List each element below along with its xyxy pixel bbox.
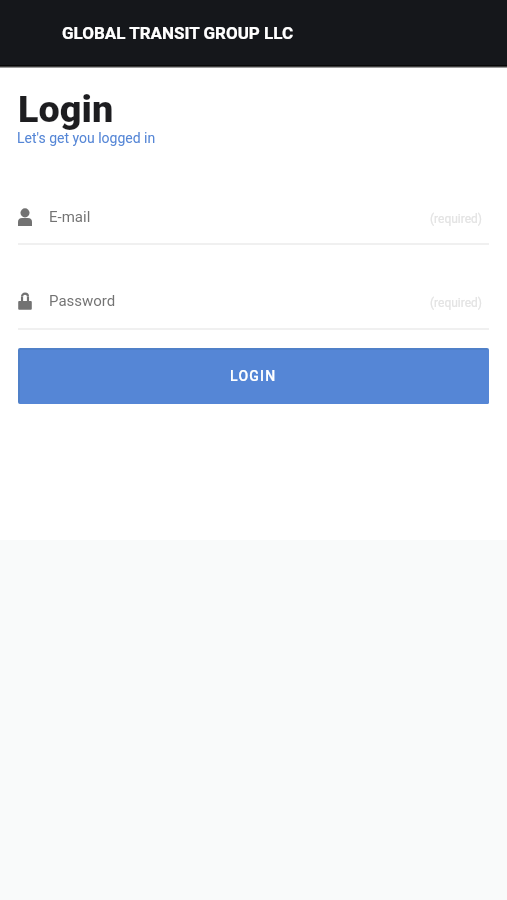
staticText: Login bbox=[18, 87, 114, 131]
button[interactable]: Password bbox=[18, 288, 489, 314]
other: Password bbox=[18, 292, 32, 310]
button[interactable]: E-mail bbox=[18, 204, 489, 230]
staticText: Password bbox=[49, 292, 116, 310]
button[interactable]: LOGIN bbox=[18, 348, 489, 404]
staticText: E-mail bbox=[49, 208, 91, 226]
staticText: GLOBAL TRANSIT GROUP LLC bbox=[62, 23, 294, 43]
other: E-mail bbox=[18, 208, 32, 226]
staticText: (required) bbox=[430, 296, 483, 310]
staticText: Let's get you logged in bbox=[17, 130, 156, 146]
staticText: (required) bbox=[430, 212, 483, 226]
staticText: LOGIN bbox=[230, 368, 277, 384]
